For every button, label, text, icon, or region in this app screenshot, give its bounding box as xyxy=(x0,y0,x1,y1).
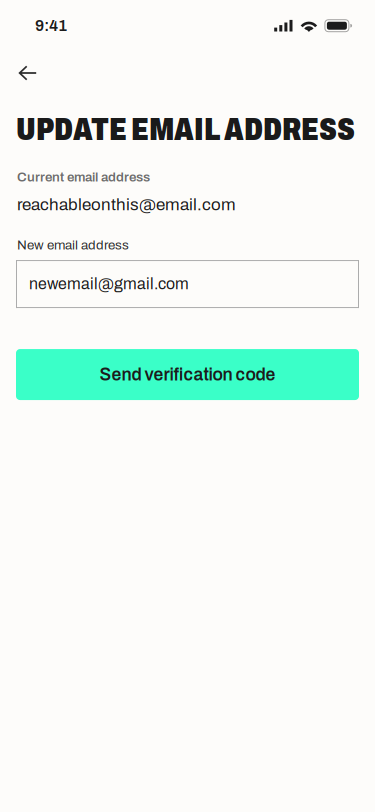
button[interactable]: newemail@gmail.com xyxy=(16,260,359,308)
staticText: Send verification code xyxy=(99,365,275,384)
button[interactable]: Back xyxy=(0,50,51,93)
staticText: New email address xyxy=(17,238,129,252)
staticText: reachableonthis@email.com xyxy=(17,195,236,214)
staticText: 9:41 xyxy=(35,17,67,34)
staticText: newemail@gmail.com xyxy=(29,275,189,293)
staticText: UPDATE EMAIL ADDRESS xyxy=(16,112,355,147)
staticText: Current email address xyxy=(17,170,150,184)
button[interactable]: Send verification code xyxy=(16,349,359,400)
